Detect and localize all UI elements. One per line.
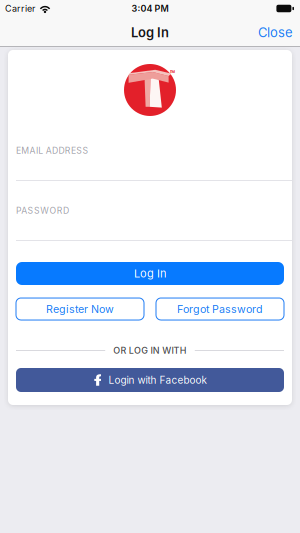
- button[interactable]: PASSWORD: [8, 204, 292, 217]
- staticText: Carrier: [5, 3, 35, 14]
- staticText: EMAIL ADDRESS: [16, 145, 89, 156]
- staticText: Login with Facebook: [108, 374, 206, 386]
- staticText: OR LOG IN WITH: [113, 345, 187, 356]
- staticText: TM: [169, 70, 174, 74]
- button[interactable]: Close: [258, 25, 300, 40]
- staticText: Log In: [134, 267, 166, 280]
- button[interactable]: Login with Facebook: [16, 368, 284, 392]
- button[interactable]: Log In: [16, 262, 284, 285]
- staticText: PASSWORD: [16, 205, 69, 216]
- staticText: Log In: [131, 25, 169, 40]
- staticText: Forgot Password: [177, 302, 263, 315]
- button[interactable]: Register Now: [16, 298, 144, 320]
- staticText: Close: [258, 25, 293, 40]
- button[interactable]: Forgot Password: [156, 298, 284, 320]
- staticText: Register Now: [46, 302, 114, 315]
- staticText: 3:04 PM: [131, 3, 168, 14]
- button[interactable]: EMAIL ADDRESS: [8, 144, 292, 157]
